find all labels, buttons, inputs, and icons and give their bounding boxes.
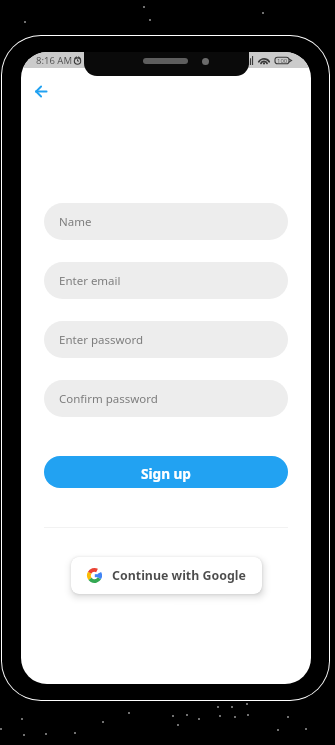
button[interactable]: Enter email: [44, 262, 288, 299]
staticText: Name: [59, 214, 92, 230]
staticText: Continue with Google: [112, 567, 246, 584]
staticText: Enter email: [59, 273, 121, 289]
button[interactable]: Back: [28, 78, 54, 104]
button[interactable]: Confirm password: [44, 380, 288, 417]
staticText: Sign up: [141, 464, 191, 483]
staticText: Enter password: [59, 332, 144, 348]
staticText: Confirm password: [59, 391, 158, 407]
button[interactable]: Name: [44, 203, 288, 240]
button[interactable]: Enter password: [44, 321, 288, 358]
button[interactable]: Sign up: [44, 456, 288, 488]
staticText: 100: [277, 57, 288, 65]
staticText: 8:16 AM: [36, 54, 73, 67]
button[interactable]: Continue with Google: [71, 557, 262, 594]
